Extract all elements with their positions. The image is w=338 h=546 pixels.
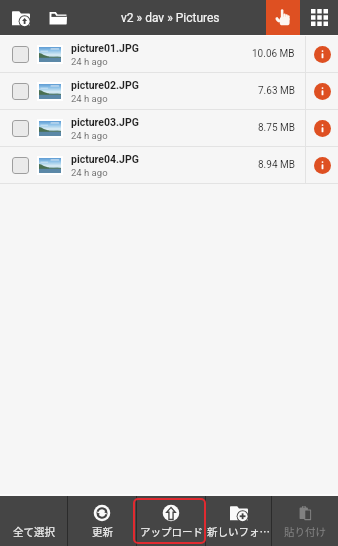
staticText: picture01.JPG xyxy=(71,42,139,54)
staticText: 更新 xyxy=(92,524,113,539)
button[interactable]: File info xyxy=(306,147,338,183)
staticText: 10.06 MB xyxy=(252,48,295,60)
staticText: 24 h ago xyxy=(71,130,108,141)
button[interactable]: File info xyxy=(306,36,338,72)
staticText: 8.75 MB xyxy=(258,122,295,134)
button[interactable]: picture01.JPG xyxy=(0,36,338,72)
staticText: 24 h ago xyxy=(71,167,108,178)
staticText: 全て選択 xyxy=(13,524,55,539)
staticText: 24 h ago xyxy=(71,93,108,104)
button[interactable]: File info xyxy=(306,110,338,146)
button[interactable]: 更新 xyxy=(68,496,136,546)
button[interactable]: アップロード xyxy=(137,496,205,546)
button[interactable]: 全て選択 xyxy=(0,496,67,546)
staticText: 貼り付け xyxy=(284,524,326,539)
staticText: picture02.JPG xyxy=(71,79,139,91)
staticText: 24 h ago xyxy=(71,56,108,67)
staticText: 8.94 MB xyxy=(258,159,295,171)
button[interactable]: Grid view xyxy=(300,0,338,35)
staticText: picture04.JPG xyxy=(71,153,139,165)
staticText: アップロード xyxy=(140,524,203,539)
button[interactable]: 貼り付け xyxy=(272,496,338,546)
staticText: v2 » dav » Pictures xyxy=(121,11,220,25)
button[interactable]: File info xyxy=(306,73,338,109)
button[interactable]: Selection mode xyxy=(266,0,300,35)
button[interactable]: picture03.JPG xyxy=(0,110,338,146)
button[interactable]: picture04.JPG xyxy=(0,147,338,183)
button[interactable]: picture02.JPG xyxy=(0,73,338,109)
staticText: picture03.JPG xyxy=(71,116,139,128)
staticText: 7.63 MB xyxy=(258,85,295,97)
button[interactable]: Open folder xyxy=(42,0,74,35)
button[interactable]: 新しいフォ… xyxy=(206,496,271,546)
button[interactable]: Upload to folder xyxy=(0,0,42,35)
staticText: 新しいフォ… xyxy=(207,524,270,539)
